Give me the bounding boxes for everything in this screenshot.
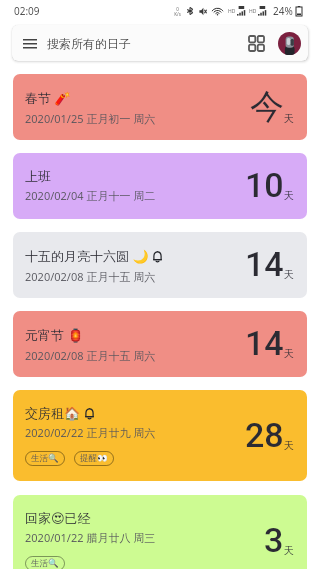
- button[interactable]: 交房租🏠: [13, 390, 307, 481]
- staticText: 2020/02/08 正月十五 周六: [25, 348, 156, 363]
- staticText: 天: [284, 268, 294, 281]
- staticText: 今: [250, 85, 284, 128]
- button[interactable]: 元宵节 🏮: [13, 311, 307, 377]
- staticText: 天: [284, 189, 294, 202]
- other: Menu: [22, 35, 38, 51]
- staticText: 春节 🧨: [25, 89, 71, 107]
- staticText: 02:09: [14, 4, 40, 18]
- button[interactable]: Grid view: [243, 30, 269, 56]
- staticText: 交房租🏠: [25, 405, 81, 421]
- button[interactable]: 十五的月亮十六圆 🌙: [13, 232, 307, 298]
- staticText: 24%: [273, 4, 293, 18]
- button[interactable]: 生活🔍: [31, 453, 59, 464]
- staticText: 天: [284, 439, 294, 452]
- staticText: 上班: [25, 168, 51, 184]
- staticText: 元宵节 🏮: [25, 326, 84, 344]
- staticText: 2020/02/04 正月十一 周二: [25, 188, 156, 203]
- staticText: 2020/01/25 正月初一 周六: [25, 111, 156, 126]
- staticText: 28: [245, 415, 284, 455]
- staticText: 生活🔍: [31, 558, 59, 569]
- staticText: 提醒👀: [80, 453, 108, 464]
- staticText: HD: [249, 8, 257, 15]
- staticText: 2020/02/08 正月十五 周六: [25, 269, 156, 284]
- staticText: 10: [245, 165, 284, 205]
- staticText: 生活🔍: [31, 453, 59, 464]
- staticText: 十五的月亮十六圆 🌙: [25, 247, 149, 265]
- button[interactable]: 回家😍已经: [13, 495, 307, 569]
- staticText: 2020/01/22 腊月廿八 周三: [25, 530, 156, 545]
- button[interactable]: 上班: [13, 153, 307, 219]
- staticText: 2020/02/22 正月廿九 周六: [25, 425, 156, 440]
- staticText: 天: [284, 544, 294, 557]
- staticText: 搜索所有的日子: [47, 36, 131, 51]
- button[interactable]: Menu: [12, 25, 308, 61]
- staticText: HD: [228, 8, 236, 15]
- staticText: 天: [284, 112, 294, 125]
- button[interactable]: 春节 🧨: [13, 74, 307, 140]
- button[interactable]: Profile: [278, 32, 301, 55]
- button[interactable]: 提醒👀: [80, 453, 108, 464]
- staticText: 天: [284, 347, 294, 360]
- staticText: 回家😍已经: [25, 510, 91, 526]
- staticText: 14: [245, 244, 284, 284]
- staticText: 0 K/s: [174, 6, 181, 17]
- button[interactable]: 生活🔍: [31, 558, 59, 569]
- staticText: 14: [245, 323, 284, 363]
- staticText: 3: [264, 520, 284, 560]
